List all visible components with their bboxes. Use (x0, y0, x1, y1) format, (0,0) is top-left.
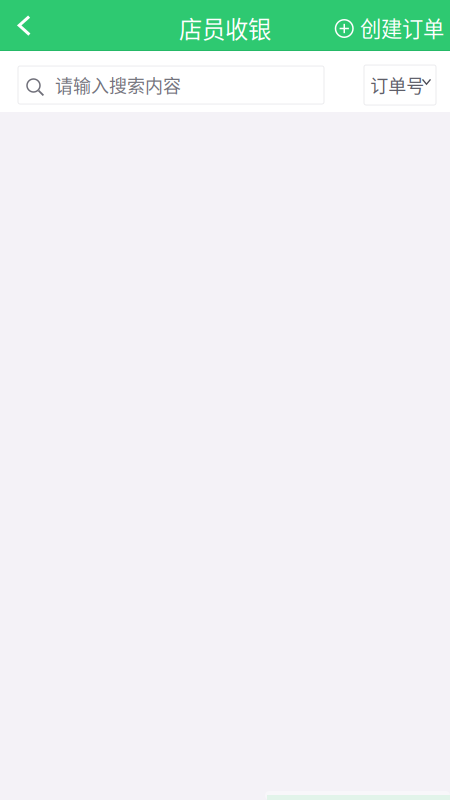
button[interactable]: 请输入搜索内容 (18, 66, 324, 104)
button[interactable]: 创建订单 (325, 0, 450, 51)
staticText: 订单号 (370, 72, 424, 98)
button[interactable]: 返回 (0, 0, 46, 51)
staticText: 请输入搜索内容 (55, 72, 181, 98)
button[interactable]: 订单号 (364, 65, 436, 105)
staticText: 创建订单 (360, 12, 444, 43)
staticText: 店员收银 (179, 11, 271, 45)
